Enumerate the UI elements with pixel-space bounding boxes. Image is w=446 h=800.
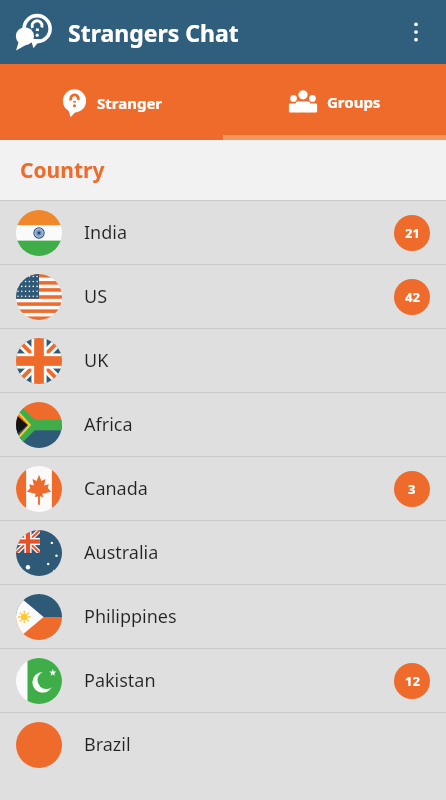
staticText: US <box>84 284 108 309</box>
button[interactable]: Canada <box>0 457 446 520</box>
button[interactable]: Philippines <box>0 585 446 648</box>
staticText: Philippines <box>84 604 177 629</box>
staticText: Canada <box>84 476 148 501</box>
staticText: UK <box>84 348 109 373</box>
staticText: Stranger <box>97 93 163 113</box>
staticText: Country <box>20 156 105 185</box>
button[interactable]: Brazil <box>0 713 446 776</box>
staticText: Australia <box>84 540 159 565</box>
staticText: 21 <box>405 224 420 242</box>
staticText: Pakistan <box>84 668 156 693</box>
staticText: Brazil <box>84 732 131 757</box>
staticText: India <box>84 220 128 245</box>
staticText: 12 <box>405 672 420 690</box>
button[interactable]: Australia <box>0 521 446 584</box>
button[interactable]: Pakistan <box>0 649 446 712</box>
button[interactable]: Stranger <box>0 64 223 140</box>
button[interactable]: India <box>0 201 446 264</box>
staticText: Africa <box>84 412 133 437</box>
staticText: 42 <box>405 288 420 306</box>
button[interactable]: Africa <box>0 393 446 456</box>
staticText: Groups <box>327 92 381 112</box>
button[interactable]: Groups <box>223 64 446 140</box>
staticText: Strangers Chat <box>68 17 239 48</box>
button[interactable]: UK <box>0 329 446 392</box>
button[interactable]: More options <box>392 8 440 56</box>
staticText: 3 <box>408 480 416 498</box>
button[interactable]: US <box>0 265 446 328</box>
